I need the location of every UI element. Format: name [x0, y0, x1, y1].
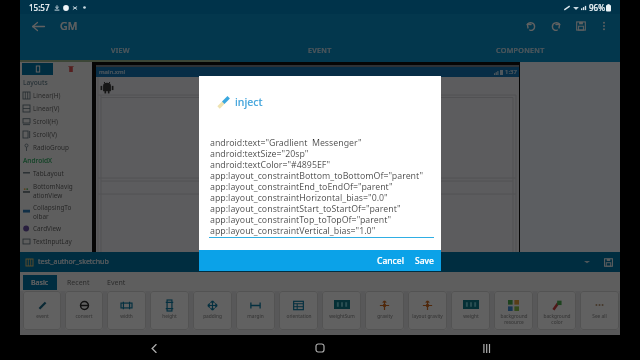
button[interactable]: weightSum — [322, 291, 361, 330]
button[interactable]: Redo — [543, 14, 568, 38]
button[interactable]: event — [23, 291, 61, 330]
staticText: app:layout_constraintBottom_toBottomOf="… — [210, 170, 423, 181]
button[interactable]: TextInputLay — [20, 235, 91, 248]
button[interactable]: Linear(H) — [20, 89, 91, 102]
staticText: weight — [463, 313, 479, 320]
staticText: convert — [75, 313, 93, 320]
staticText: Scroll(H) — [33, 117, 58, 126]
staticText: gravity — [377, 313, 393, 320]
button[interactable]: Back — [142, 336, 166, 360]
button[interactable]: background resource — [494, 291, 533, 330]
staticText: Linear(V) — [33, 104, 60, 113]
button[interactable]: TabLayout — [20, 167, 91, 180]
staticText: GM — [60, 19, 78, 33]
button[interactable]: Back — [28, 16, 48, 36]
staticText: width — [120, 313, 133, 320]
staticText: android:textSize="20sp" — [210, 148, 309, 159]
button[interactable]: See all — [580, 291, 619, 330]
staticText: CardView — [33, 224, 62, 233]
staticText: VIEW — [111, 45, 130, 55]
staticText: inject — [235, 95, 263, 109]
staticText: background resource — [500, 313, 528, 325]
staticText: test_author_sketchub — [38, 257, 109, 267]
staticText: padding — [203, 313, 222, 320]
staticText: app:layout_constraintVertical_bias="1.0" — [210, 225, 376, 236]
button[interactable]: weight — [451, 291, 490, 330]
button[interactable]: BottomNavig ationView — [20, 180, 91, 201]
button[interactable]: width — [107, 291, 146, 330]
button[interactable]: Scroll(H) — [20, 115, 91, 128]
staticText: Layouts — [23, 78, 48, 87]
button[interactable]: CollapsingTo olbar — [20, 201, 91, 222]
staticText: Basic — [31, 278, 49, 288]
staticText: See all — [592, 313, 607, 320]
staticText: app:layout_constraintHorizontal_bias="0.… — [210, 192, 388, 203]
button[interactable]: Undo — [518, 14, 543, 38]
staticText: Save — [415, 255, 434, 267]
staticText: android:text="Gradlient Messenger" — [210, 137, 362, 148]
button[interactable]: RadioGroup — [20, 141, 91, 154]
button[interactable]: Basic — [23, 275, 57, 290]
button[interactable]: Widgets — [22, 63, 53, 75]
staticText: 96% — [589, 2, 605, 13]
staticText: background color — [543, 313, 571, 325]
button[interactable]: layout gravity — [408, 291, 447, 330]
button[interactable]: Save — [411, 252, 438, 270]
staticText: TabLayout — [33, 169, 64, 178]
staticText: height — [162, 313, 177, 320]
staticText: app:layout_constraintEnd_toEndOf="parent… — [210, 181, 393, 192]
button[interactable]: Save project — [600, 254, 616, 270]
button[interactable]: CardView — [20, 222, 91, 235]
button[interactable]: Recents — [474, 336, 498, 360]
staticText: CollapsingTo olbar — [33, 203, 72, 220]
staticText: event — [36, 313, 49, 320]
button[interactable]: EVENT — [220, 38, 420, 62]
staticText: weightSum — [329, 313, 355, 320]
staticText: Event — [107, 278, 126, 288]
staticText: COMPONENT — [496, 45, 545, 55]
button[interactable]: Delete — [66, 64, 76, 74]
staticText: 15:57 — [29, 2, 50, 13]
button[interactable]: COMPONENT — [420, 38, 620, 62]
button[interactable]: padding — [193, 291, 232, 330]
staticText: Linear(H) — [33, 91, 61, 100]
staticText: app:layout_constraintTop_toTopOf="parent… — [210, 214, 392, 225]
button[interactable]: VIEW — [20, 38, 220, 62]
staticText: BottomNavig ationView — [33, 182, 73, 199]
staticText: Recent — [67, 278, 90, 288]
staticText: Scroll(V) — [33, 130, 57, 139]
button[interactable]: height — [150, 291, 189, 330]
staticText: main.xml — [99, 68, 126, 76]
staticText: android:textColor="#4895EF" — [210, 159, 330, 170]
button[interactable]: background color — [537, 291, 576, 330]
staticText: margin — [247, 313, 264, 320]
button[interactable]: orientation — [279, 291, 318, 330]
staticText: AndroidX — [23, 156, 53, 165]
button[interactable]: Save — [568, 14, 593, 38]
button[interactable]: Home — [308, 336, 332, 360]
button[interactable]: Linear(V) — [20, 102, 91, 115]
button[interactable]: Event — [104, 275, 129, 291]
staticText: EVENT — [308, 45, 332, 55]
button[interactable]: Recent — [64, 275, 93, 291]
button[interactable]: Cancel — [373, 252, 408, 270]
staticText: layout gravity — [412, 313, 443, 320]
button[interactable]: convert — [65, 291, 103, 330]
staticText: app:layout_constraintStart_toStartOf="pa… — [210, 203, 401, 214]
staticText: 1:37 — [505, 68, 517, 76]
button[interactable]: More options — [593, 15, 615, 37]
staticText: TextInputLay — [33, 237, 72, 246]
button[interactable]: margin — [236, 291, 275, 330]
staticText: Cancel — [377, 255, 404, 267]
staticText: RadioGroup — [33, 143, 69, 152]
button[interactable]: gravity — [365, 291, 404, 330]
button[interactable]: Expand — [580, 255, 594, 269]
button[interactable]: Scroll(V) — [20, 128, 91, 141]
staticText: orientation — [286, 313, 312, 320]
